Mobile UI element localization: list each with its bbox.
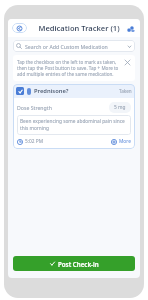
staticText: Been experiencing some abdominal pain si… <box>20 118 128 132</box>
button[interactable]: Dismiss <box>124 59 131 66</box>
button[interactable]: Been experiencing some abdominal pain si… <box>17 115 131 135</box>
button[interactable]: Back <box>12 23 27 33</box>
button[interactable]: 5 mg <box>109 102 131 113</box>
staticText: 5 mg <box>114 104 126 111</box>
staticText: Tap the checkbox on the left to mark as … <box>17 59 121 77</box>
button[interactable]: Post Check-in <box>13 256 135 271</box>
staticText: Medication Tracker (1) <box>33 23 125 33</box>
button[interactable]: Mark as taken <box>16 87 24 95</box>
button[interactable]: Mark as taken <box>13 84 135 149</box>
button[interactable]: 5:02 PM <box>17 138 46 145</box>
staticText: Dose Strength <box>17 104 109 111</box>
button[interactable]: Search or Add Custom Medication <box>13 40 135 52</box>
staticText: Search or Add Custom Medication <box>25 43 127 50</box>
staticText: Post Check-in <box>58 260 99 268</box>
staticText: 5:02 PM <box>25 138 44 145</box>
staticText: Taken <box>119 88 132 94</box>
button[interactable]: Share <box>125 23 136 34</box>
button[interactable]: More <box>111 138 131 145</box>
staticText: Prednisone? <box>34 87 119 95</box>
staticText: More <box>119 138 131 145</box>
